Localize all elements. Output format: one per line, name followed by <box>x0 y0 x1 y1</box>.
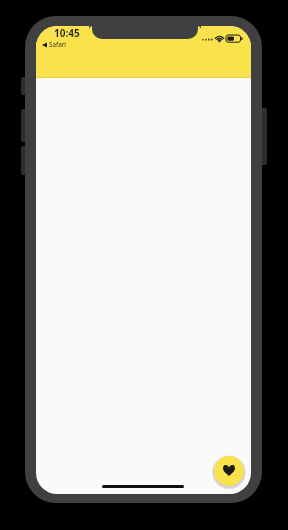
staticText: 10:45 <box>54 26 80 40</box>
staticText: Safari <box>49 40 66 48</box>
